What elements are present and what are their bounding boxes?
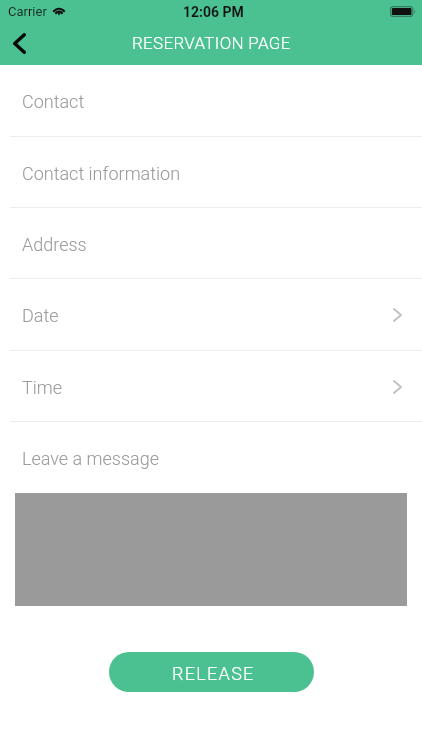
staticText: RESERVATION PAGE xyxy=(132,33,291,53)
staticText: RELEASE xyxy=(172,663,255,684)
staticText: Address xyxy=(22,234,87,255)
button[interactable]: Back xyxy=(0,22,44,65)
staticText: Contact information xyxy=(22,163,181,184)
staticText: Leave a message xyxy=(22,448,160,469)
button[interactable]: Contact information xyxy=(0,136,422,208)
button[interactable]: Address xyxy=(0,208,422,279)
staticText: Time xyxy=(22,377,63,398)
button[interactable]: Time xyxy=(0,350,422,422)
button[interactable]: Contact xyxy=(0,65,422,136)
staticText: Date xyxy=(22,305,59,326)
staticText: Contact xyxy=(22,91,85,112)
button[interactable]: Date xyxy=(0,278,422,350)
staticText: Carrier xyxy=(8,4,47,19)
button[interactable]: RELEASE xyxy=(109,652,314,692)
staticText: 12:06 PM xyxy=(183,4,244,20)
